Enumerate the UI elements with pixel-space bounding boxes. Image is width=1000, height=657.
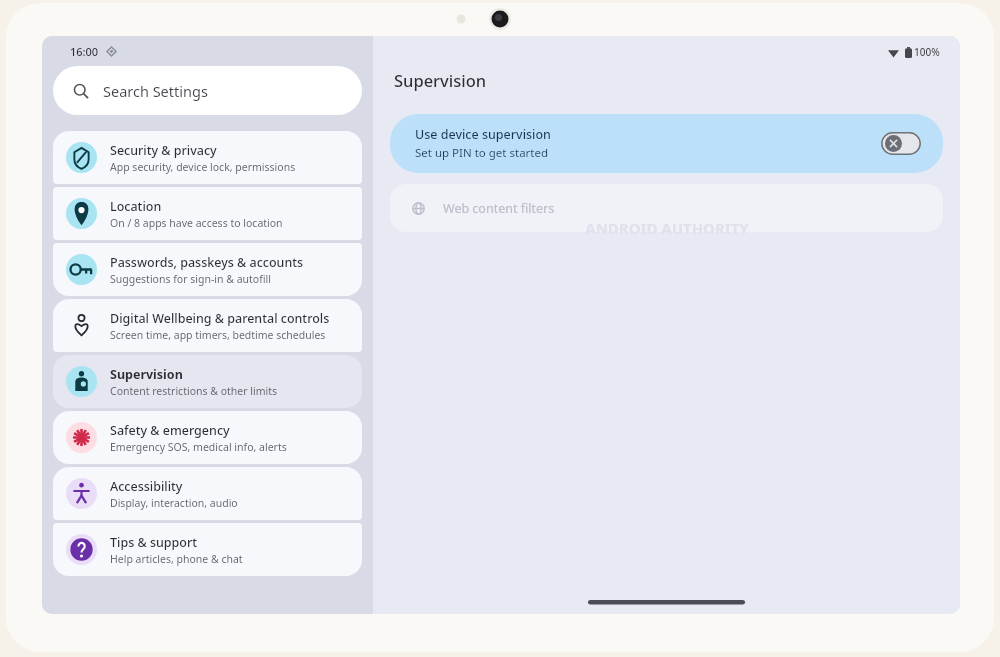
staticText: 100%	[914, 45, 940, 59]
staticText: Display, interaction, audio	[110, 496, 238, 510]
staticText: Security & privacy	[110, 142, 217, 159]
button[interactable]: Use device supervision	[390, 114, 943, 173]
button[interactable]: Accessibility	[53, 467, 362, 520]
staticText: ANDROID AUTHORITY	[585, 218, 749, 238]
staticText: App security, device lock, permissions	[110, 160, 296, 174]
staticText: Web content filters	[443, 200, 555, 217]
staticText: Passwords, passkeys & accounts	[110, 254, 304, 271]
staticText: Tips & support	[110, 534, 198, 551]
staticText: Emergency SOS, medical info, alerts	[110, 440, 287, 454]
staticText: Content restrictions & other limits	[110, 384, 278, 398]
staticText: Safety & emergency	[110, 422, 230, 439]
button[interactable]: Web content filters	[390, 184, 943, 232]
staticText: Screen time, app timers, bedtime schedul…	[110, 328, 326, 342]
staticText: Search Settings	[103, 81, 208, 101]
button[interactable]: Passwords, passkeys & accounts	[53, 243, 362, 296]
button[interactable]: Location	[53, 187, 362, 240]
staticText: On / 8 apps have access to location	[110, 216, 283, 230]
staticText: 16:00	[70, 44, 99, 59]
staticText: Suggestions for sign-in & autofill	[110, 272, 271, 286]
staticText: Help articles, phone & chat	[110, 552, 243, 566]
button[interactable]: Use device supervision toggle	[881, 132, 921, 155]
staticText: Location	[110, 198, 162, 215]
staticText: Set up PIN to get started	[415, 145, 549, 161]
button[interactable]: Digital Wellbeing & parental controls	[53, 299, 362, 352]
staticText: Accessibility	[110, 478, 183, 495]
button[interactable]: Security & privacy	[53, 131, 362, 184]
button[interactable]: Safety & emergency	[53, 411, 362, 464]
staticText: Supervision	[110, 366, 183, 383]
button[interactable]: Supervision	[53, 355, 362, 408]
button[interactable]: Search Settings	[53, 66, 362, 115]
button[interactable]: Tips & support	[53, 523, 362, 576]
staticText: Use device supervision	[415, 126, 551, 143]
staticText: Supervision	[394, 69, 487, 91]
staticText: Digital Wellbeing & parental controls	[110, 310, 330, 327]
